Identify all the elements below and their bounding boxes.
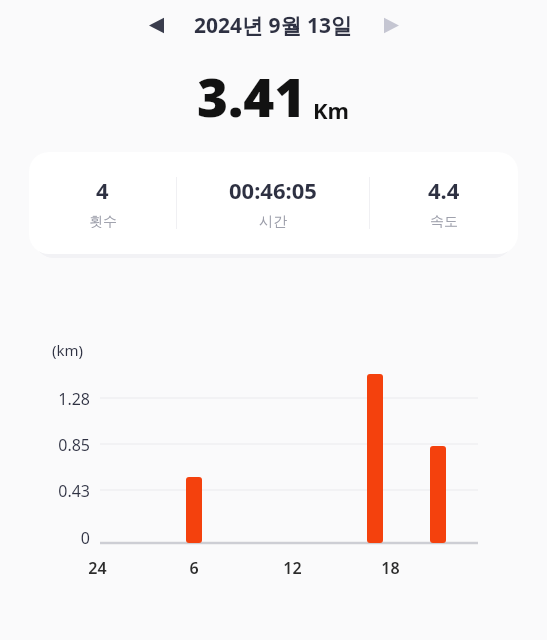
staticText: 00:46:05	[229, 175, 317, 205]
staticText: 1.28	[58, 388, 90, 410]
staticText: 24	[88, 557, 107, 579]
button[interactable]: Next day	[373, 7, 409, 43]
staticText: 4	[96, 175, 109, 205]
staticText: 3.41	[197, 60, 306, 132]
staticText: 횟수	[89, 213, 117, 231]
staticText: 2024년 9월 13일	[194, 11, 353, 40]
staticText: 4.4	[428, 175, 460, 205]
button[interactable]: 4	[29, 175, 176, 231]
staticText: 6	[189, 557, 199, 579]
button[interactable]: Previous day	[138, 7, 174, 43]
staticText: 0	[80, 527, 90, 549]
button[interactable]: 4	[29, 152, 518, 254]
staticText: 18	[381, 557, 400, 579]
staticText: 0.85	[58, 434, 90, 456]
staticText: Km	[313, 95, 350, 125]
staticText: 12	[283, 557, 302, 579]
staticText: 0.43	[58, 480, 90, 502]
button[interactable]: 4.4	[370, 175, 518, 231]
staticText: 속도	[430, 213, 458, 231]
staticText: 시간	[259, 213, 287, 231]
staticText: (km)	[52, 340, 84, 360]
button[interactable]: 00:46:05	[177, 175, 369, 231]
